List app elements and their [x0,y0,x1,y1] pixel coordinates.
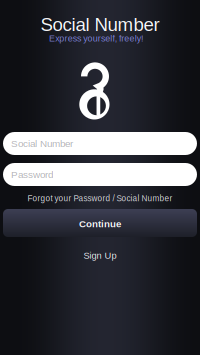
staticText: Forgot your Password / Social Number [27,194,172,203]
staticText: Social Number [40,14,159,35]
staticText: Express yourself, freely! [49,33,143,43]
button[interactable]: Social Number [3,132,197,155]
button[interactable]: Continue [3,209,197,237]
button[interactable]: Password [3,163,197,186]
button[interactable]: Sign Up [3,249,197,262]
button[interactable]: Forgot your Password / Social Number [3,192,197,205]
staticText: Continue [79,219,121,229]
staticText: Sign Up [83,250,116,261]
staticText: Password [11,169,53,180]
staticText: Social Number [11,138,73,149]
